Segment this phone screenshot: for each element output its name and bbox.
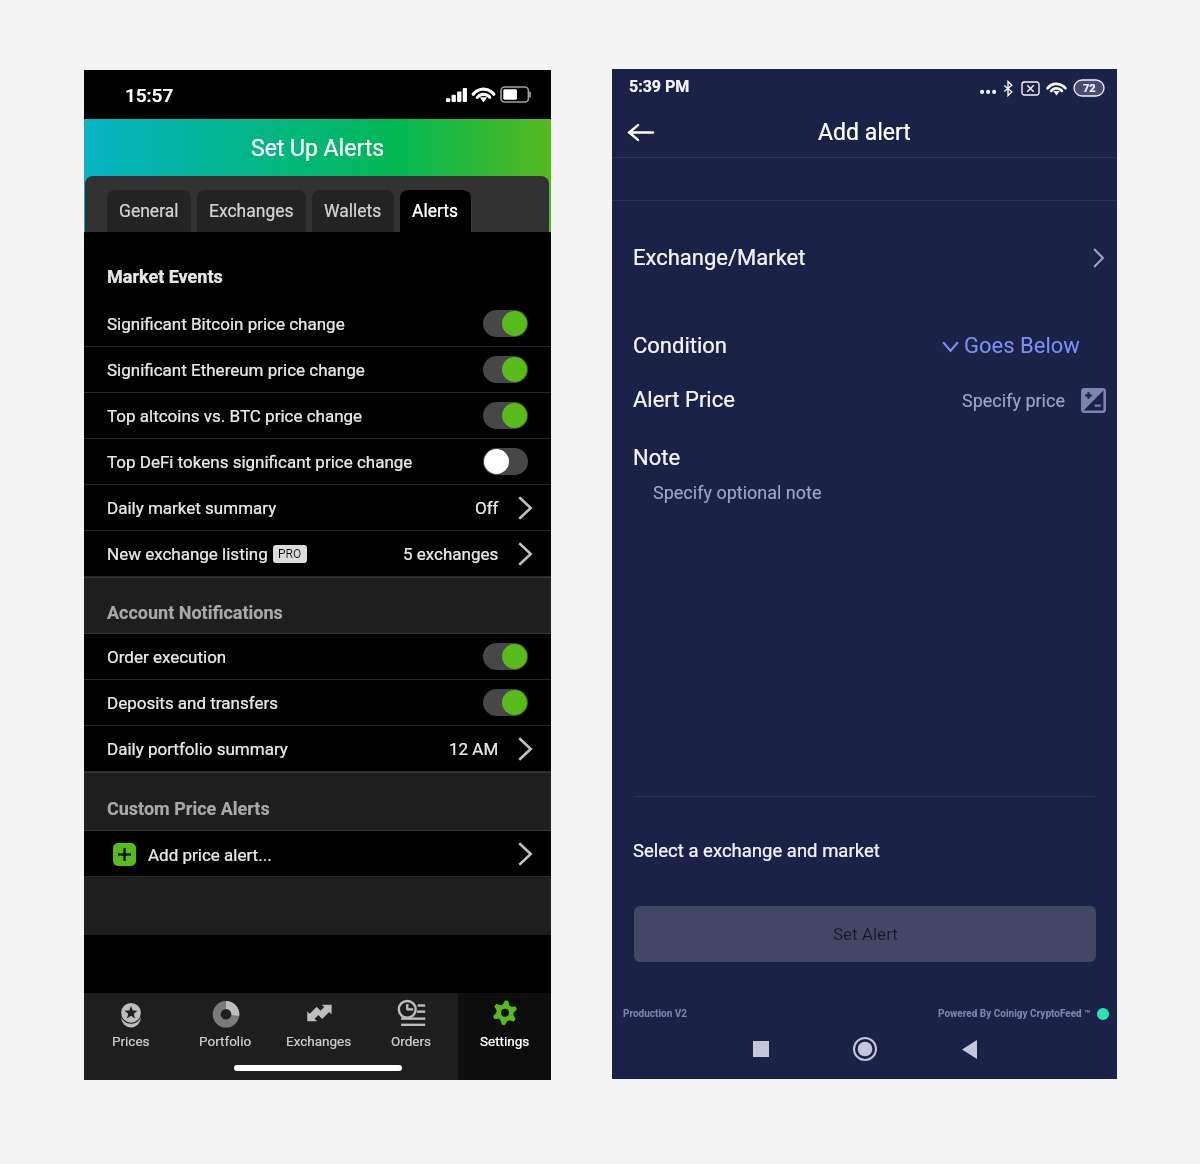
button[interactable]: Specify optional note <box>633 475 1095 509</box>
button[interactable]: Recent apps <box>709 1028 813 1070</box>
staticText: New exchange listing <box>107 544 268 564</box>
button[interactable]: Significant Ethereum price change <box>84 347 551 393</box>
button[interactable]: General <box>107 190 191 232</box>
staticText: Top DeFi tokens significant price change <box>107 452 413 472</box>
staticText: 15:57 <box>125 84 174 106</box>
staticText: Wallets <box>324 201 382 222</box>
button[interactable]: Exchanges <box>197 190 306 232</box>
staticText: Off <box>475 498 499 518</box>
button[interactable]: Top altcoins vs. BTC price change <box>84 393 551 439</box>
staticText: Set Up Alerts <box>251 135 385 162</box>
staticText: Custom Price Alerts <box>107 798 270 819</box>
staticText: Select a exchange and market <box>633 840 880 862</box>
staticText: Exchange/Market <box>633 245 806 271</box>
staticText: Top altcoins vs. BTC price change <box>107 406 363 426</box>
staticText: Account Notifications <box>107 602 283 623</box>
button[interactable]: Portfolio <box>178 993 272 1080</box>
button[interactable]: Orders <box>365 993 458 1080</box>
staticText: Add price alert... <box>148 845 272 865</box>
button[interactable]: Significant Bitcoin price change <box>84 301 551 347</box>
button[interactable]: New exchange listing <box>84 531 551 577</box>
staticText: Add alert <box>818 119 911 146</box>
staticText: Production V2 <box>623 1008 688 1020</box>
button[interactable]: Alerts <box>400 190 471 232</box>
button[interactable]: Prices <box>84 993 178 1080</box>
staticText: Alerts <box>412 201 459 222</box>
staticText: Alert Price <box>633 387 735 413</box>
staticText: Set Alert <box>833 924 898 944</box>
button[interactable]: Set Alert <box>634 906 1096 962</box>
button[interactable]: Daily market summary <box>84 485 551 531</box>
staticText: Note <box>633 445 681 471</box>
button[interactable]: Exchanges <box>272 993 365 1080</box>
staticText: 12 AM <box>449 739 499 759</box>
button[interactable]: Condition <box>612 326 1117 366</box>
staticText: Powered By Coinigy CryptoFeed ™ <box>938 1008 1091 1020</box>
staticText: Deposits and transfers <box>107 693 278 713</box>
button[interactable]: Wallets <box>312 190 394 232</box>
staticText: Daily market summary <box>107 498 277 518</box>
staticText: Goes Below <box>964 333 1080 359</box>
staticText: Condition <box>633 333 728 359</box>
staticText: Significant Bitcoin price change <box>107 314 345 334</box>
staticText: Portfolio <box>199 1033 252 1049</box>
staticText: Orders <box>391 1033 432 1049</box>
staticText: Significant Ethereum price change <box>107 360 365 380</box>
button[interactable]: Add price alert... <box>84 831 551 877</box>
staticText: Specify optional note <box>653 482 822 503</box>
button[interactable]: Settings <box>458 993 551 1080</box>
button[interactable]: Deposits and transfers <box>84 680 551 726</box>
button[interactable]: Back <box>619 111 661 153</box>
staticText: PRO <box>278 547 302 561</box>
staticText: Daily portfolio summary <box>107 739 288 759</box>
staticText: Exchanges <box>286 1033 352 1049</box>
staticText: 72 <box>1083 82 1096 95</box>
staticText: Market Events <box>107 266 223 287</box>
staticText: Prices <box>112 1033 150 1049</box>
staticText: 5:39 PM <box>629 77 690 96</box>
staticText: Specify price <box>962 390 1065 411</box>
button[interactable]: Back <box>917 1028 1021 1070</box>
staticText: Exchanges <box>209 201 294 222</box>
staticText: 5 exchanges <box>403 544 499 564</box>
button[interactable]: Exchange/Market <box>612 238 1117 278</box>
staticText: General <box>119 201 179 222</box>
button[interactable]: Top DeFi tokens significant price change <box>84 439 551 485</box>
button[interactable]: Daily portfolio summary <box>84 726 551 772</box>
button[interactable]: Alert Price <box>612 380 1117 420</box>
button[interactable]: Home <box>813 1028 917 1070</box>
staticText: Settings <box>480 1033 530 1049</box>
button[interactable]: Order execution <box>84 634 551 680</box>
staticText: Order execution <box>107 647 227 667</box>
